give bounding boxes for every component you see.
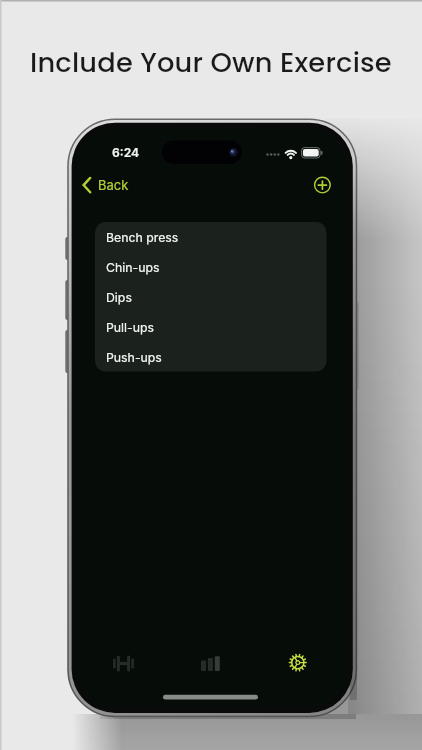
- button[interactable]: Back: [79, 172, 129, 198]
- button[interactable]: [181, 642, 239, 686]
- button[interactable]: [95, 642, 153, 686]
- button[interactable]: Chin-ups: [95, 252, 327, 282]
- staticText: Pull-ups: [106, 320, 155, 335]
- staticText: Back: [98, 177, 129, 193]
- button[interactable]: Push-ups: [95, 342, 327, 372]
- staticText: Push-ups: [106, 350, 162, 365]
- button[interactable]: [310, 172, 336, 198]
- button[interactable]: Dips: [95, 282, 327, 312]
- staticText: Bench press: [106, 230, 179, 245]
- button[interactable]: Bench press: [95, 222, 327, 252]
- button[interactable]: [269, 642, 327, 686]
- staticText: Chin-ups: [106, 260, 160, 275]
- staticText: Include Your Own Exercise: [30, 43, 392, 81]
- staticText: 6:24: [112, 145, 140, 160]
- staticText: Dips: [106, 290, 132, 305]
- button[interactable]: Pull-ups: [95, 312, 327, 342]
